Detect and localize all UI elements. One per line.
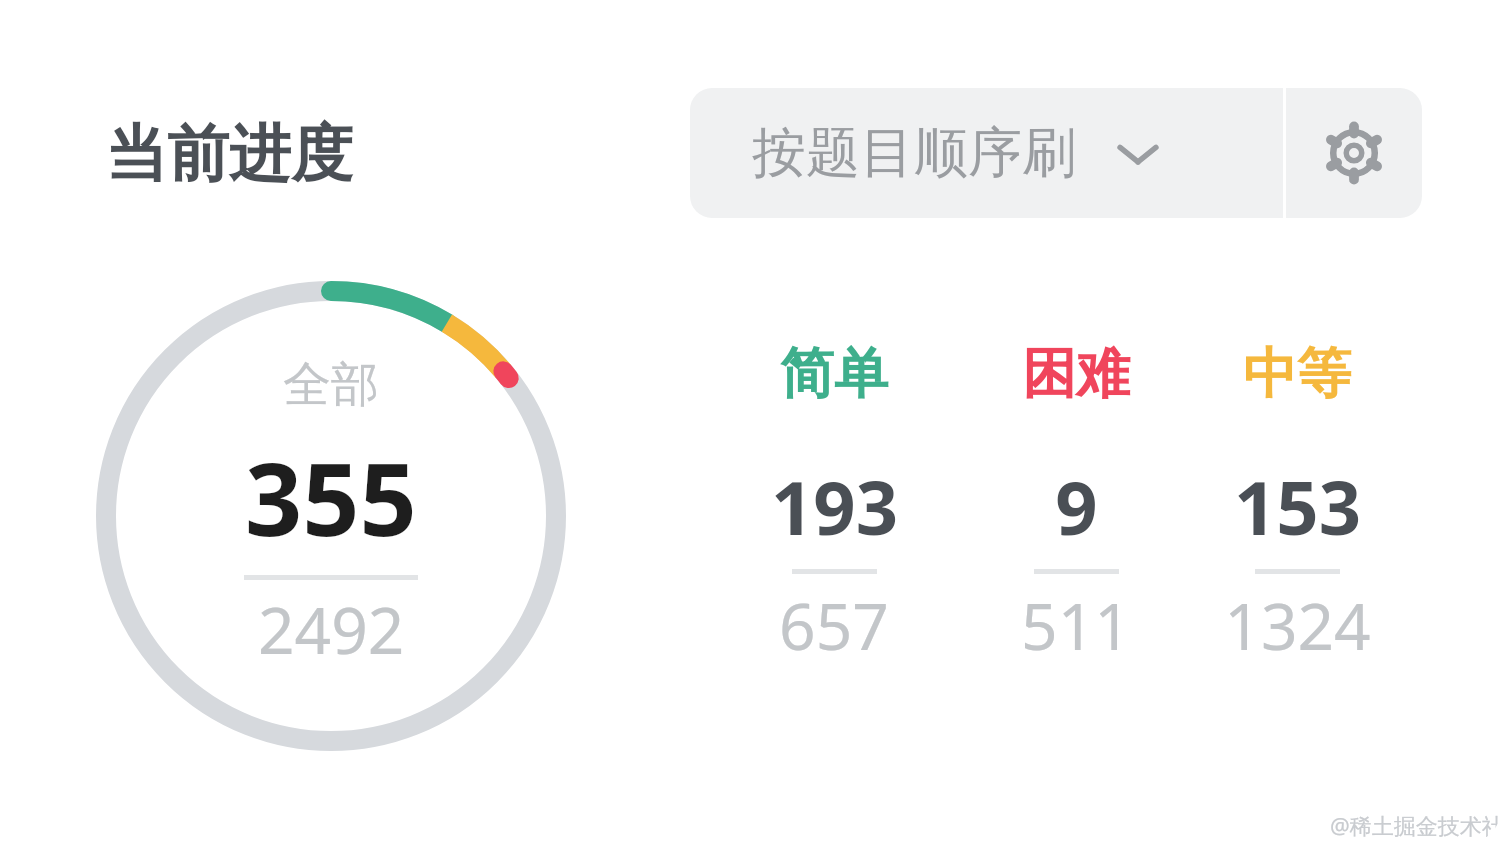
staticText: 2492 [258, 586, 405, 673]
button[interactable]: 简单 [684, 340, 984, 669]
staticText: 简单 [780, 340, 888, 408]
button[interactable]: 困难 [926, 340, 1226, 669]
staticText: 按题目顺序刷 [752, 119, 1076, 187]
staticText: @稀土掘金技术社区 [1330, 810, 1500, 840]
staticText: 657 [779, 582, 889, 669]
button[interactable]: 全部 [96, 281, 566, 751]
button[interactable]: 按题目顺序刷 [690, 88, 1283, 218]
staticText: 511 [1021, 582, 1131, 669]
staticText: 中等 [1243, 340, 1351, 408]
staticText: 困难 [1022, 340, 1130, 408]
staticText: 355 [245, 429, 417, 565]
button[interactable]: 中等 [1147, 340, 1447, 669]
staticText: 193 [771, 456, 898, 557]
button[interactable]: Settings [1286, 88, 1422, 218]
button[interactable]: 当前进度 [105, 115, 353, 193]
staticText: 当前进度 [105, 115, 353, 193]
staticText: 9 [1055, 456, 1098, 557]
staticText: 153 [1234, 456, 1361, 557]
staticText: 1324 [1224, 582, 1371, 669]
staticText: 全部 [283, 355, 379, 415]
